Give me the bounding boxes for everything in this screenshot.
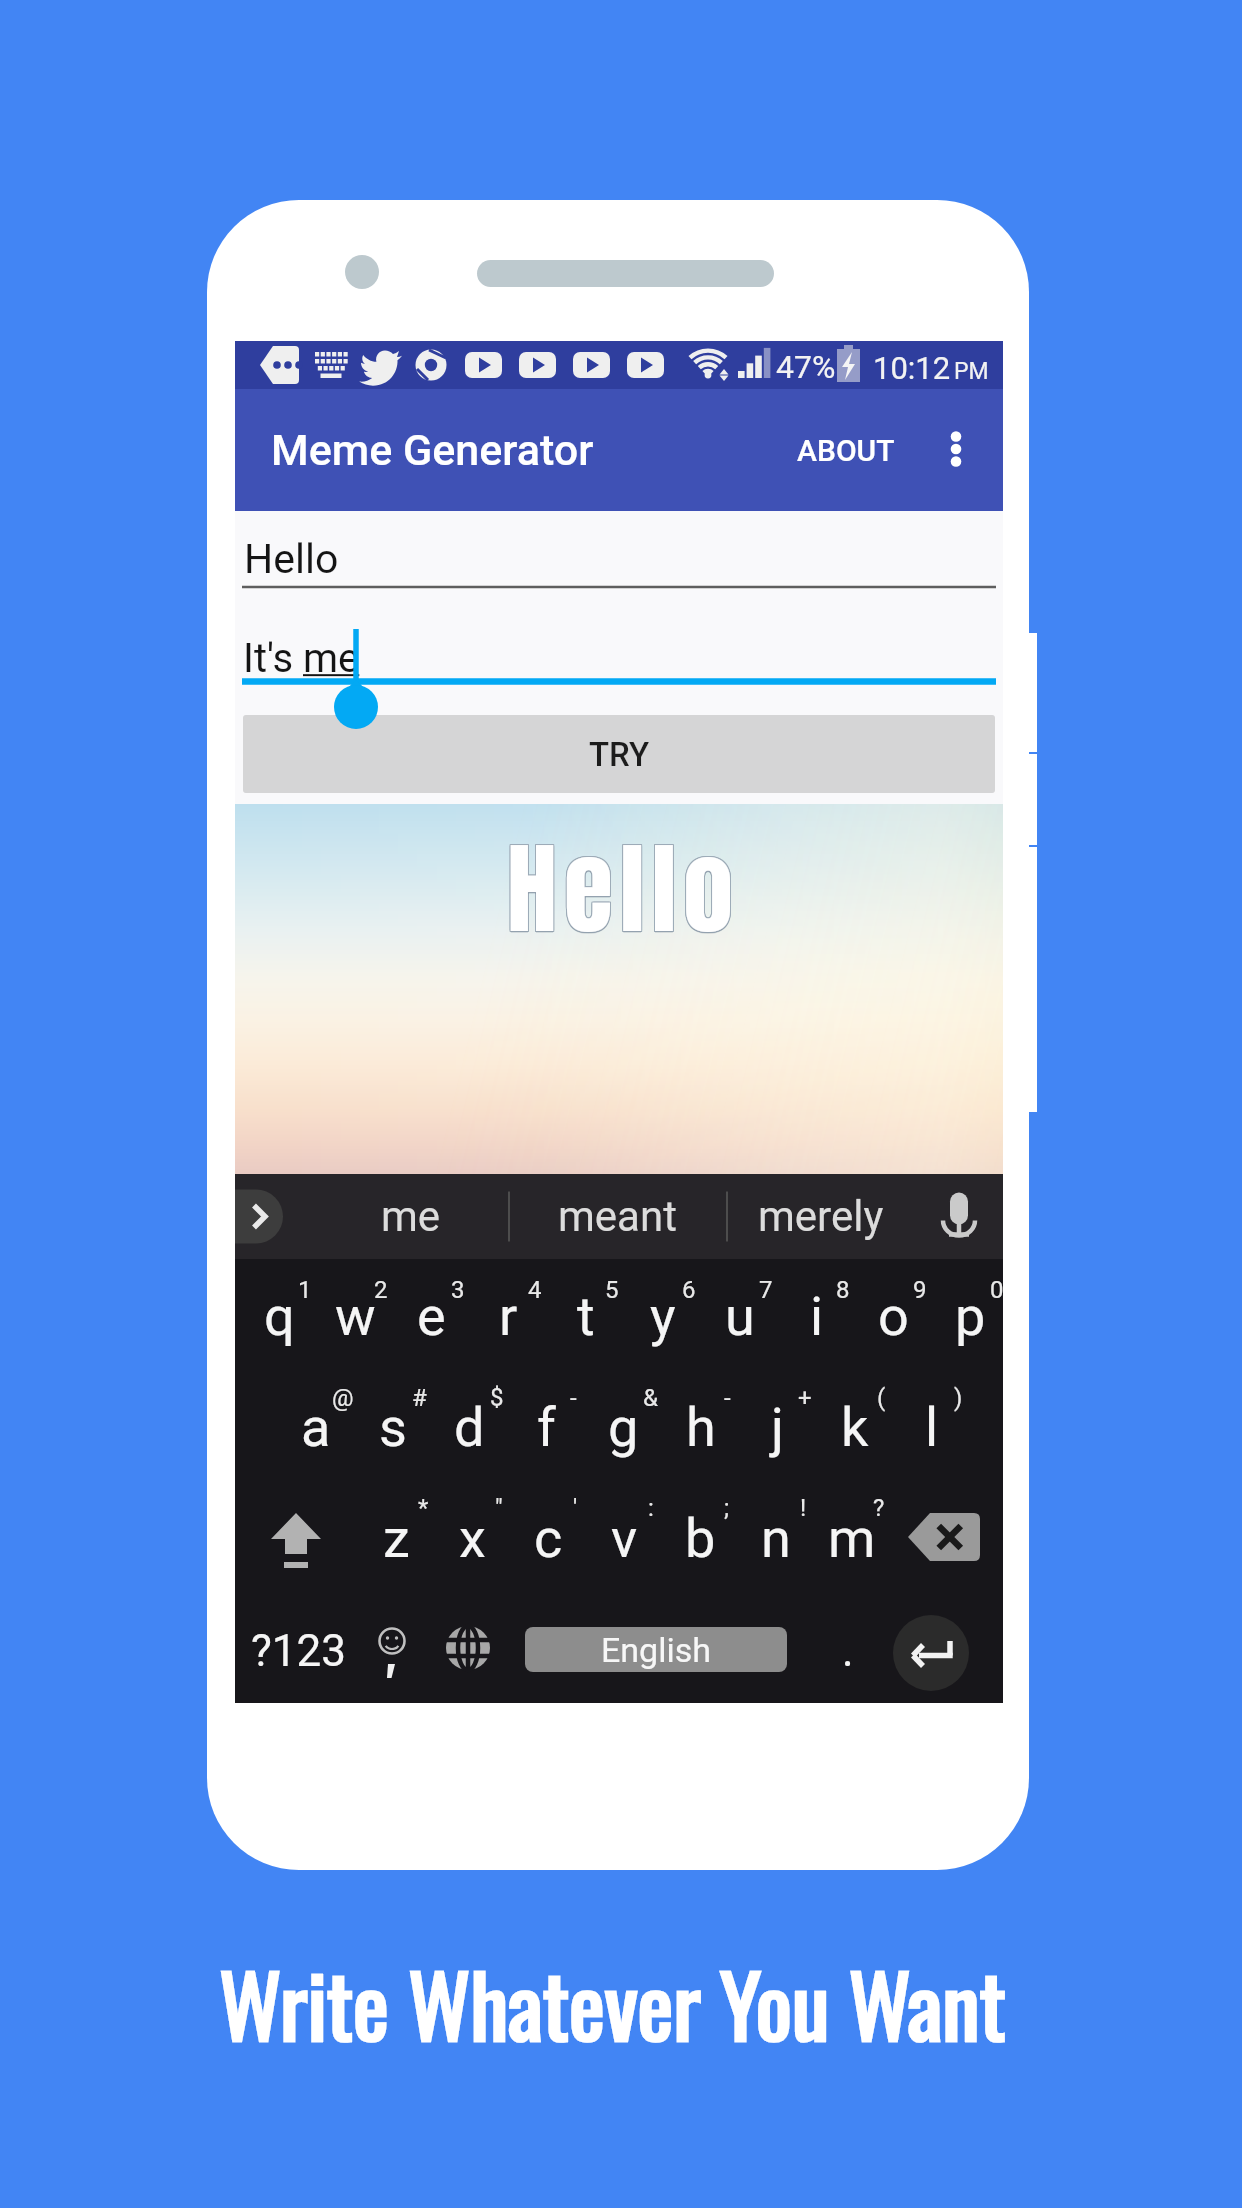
button[interactable]: b	[657, 1481, 733, 1592]
button[interactable]: q	[235, 1259, 311, 1370]
staticText: s	[379, 1396, 407, 1459]
staticText: :	[648, 1494, 654, 1522]
button[interactable]: s	[349, 1370, 426, 1481]
staticText: Hello	[506, 813, 739, 964]
button[interactable]: y	[618, 1259, 695, 1370]
staticText: o	[878, 1285, 909, 1348]
button[interactable]: a	[273, 1370, 349, 1481]
button[interactable]: Enter	[893, 1615, 969, 1691]
staticText: English	[601, 1630, 712, 1670]
button[interactable]: c	[505, 1481, 581, 1592]
staticText: Hello	[508, 814, 741, 965]
button[interactable]: i	[772, 1259, 849, 1370]
button[interactable]: meant	[517, 1174, 717, 1259]
staticText: Hello	[508, 813, 741, 964]
button[interactable]: f	[503, 1370, 580, 1481]
button[interactable]: u	[695, 1259, 772, 1370]
staticText: #	[412, 1384, 427, 1412]
staticText: Write Whatever You Want	[219, 1940, 1006, 2066]
staticText: )	[954, 1384, 963, 1412]
staticText: r	[499, 1285, 518, 1348]
button[interactable]: d	[426, 1370, 503, 1481]
button[interactable]: Expand suggestions	[235, 1174, 301, 1259]
staticText: z	[383, 1507, 410, 1570]
staticText: PM	[954, 358, 989, 385]
staticText: *	[418, 1494, 429, 1522]
button[interactable]: k	[811, 1370, 888, 1481]
button[interactable]: me	[311, 1174, 511, 1259]
button[interactable]: e	[387, 1259, 464, 1370]
staticText: 47%	[776, 348, 836, 386]
staticText: f	[537, 1396, 556, 1459]
staticText: Hello	[507, 814, 740, 965]
button[interactable]: ?123	[235, 1592, 363, 1703]
staticText: l	[925, 1396, 939, 1459]
staticText: .	[842, 1625, 854, 1677]
staticText: ?	[873, 1494, 885, 1522]
staticText: x	[459, 1507, 486, 1570]
button[interactable]: x	[429, 1481, 505, 1592]
staticText: w	[335, 1285, 376, 1348]
button[interactable]: l	[888, 1370, 965, 1481]
button[interactable]: v	[581, 1481, 657, 1592]
button[interactable]: h	[657, 1370, 734, 1481]
staticText: y	[650, 1285, 676, 1348]
button[interactable]: m	[809, 1481, 885, 1592]
staticText: Hello	[508, 812, 741, 963]
staticText: 5	[605, 1276, 619, 1304]
staticText: Hello	[507, 812, 740, 963]
button[interactable]: p	[926, 1259, 1003, 1370]
button[interactable]: Shift	[235, 1481, 353, 1592]
button[interactable]: .	[813, 1592, 883, 1703]
button[interactable]: TRY	[243, 715, 995, 793]
staticText: TRY	[589, 735, 649, 774]
staticText: merely	[758, 1192, 884, 1241]
staticText: $	[490, 1384, 504, 1412]
staticText: "	[495, 1494, 503, 1522]
staticText: -	[570, 1384, 577, 1412]
button[interactable]: More options	[927, 421, 985, 479]
staticText: 8	[836, 1276, 850, 1304]
button[interactable]: z	[353, 1481, 429, 1592]
staticText: Meme Generator	[271, 425, 594, 475]
staticText: m	[828, 1507, 876, 1570]
staticText: g	[608, 1396, 639, 1459]
staticText: n	[761, 1507, 791, 1570]
staticText: k	[841, 1396, 869, 1459]
button[interactable]: r	[464, 1259, 541, 1370]
staticText: (	[877, 1384, 886, 1412]
button[interactable]: English	[525, 1627, 787, 1672]
staticText: v	[611, 1507, 638, 1570]
button[interactable]: merely	[721, 1174, 921, 1259]
button[interactable]: Voice input	[925, 1174, 995, 1259]
staticText: me	[303, 635, 360, 682]
button[interactable]: Backspace	[885, 1481, 1003, 1592]
staticText: d	[454, 1396, 485, 1459]
staticText: +	[798, 1384, 812, 1412]
staticText: b	[685, 1507, 716, 1570]
button[interactable]: Change language	[431, 1592, 505, 1703]
staticText: me	[381, 1192, 441, 1241]
staticText: Hello	[506, 812, 739, 963]
staticText: 6	[682, 1276, 696, 1304]
button[interactable]: g	[580, 1370, 657, 1481]
button[interactable]: t	[541, 1259, 618, 1370]
staticText: ?123	[251, 1625, 346, 1677]
staticText: 10:12	[873, 350, 951, 386]
staticText: '	[573, 1494, 578, 1522]
staticText: q	[264, 1285, 295, 1348]
staticText: Hello	[507, 813, 740, 964]
button[interactable]: o	[849, 1259, 926, 1370]
button[interactable]: w	[311, 1259, 387, 1370]
staticText: i	[810, 1285, 824, 1348]
button[interactable]: Emoji	[355, 1592, 429, 1703]
staticText: 1	[298, 1276, 312, 1304]
staticText: 2	[374, 1276, 388, 1304]
staticText: It's	[243, 635, 303, 682]
button[interactable]: j	[734, 1370, 811, 1481]
button[interactable]: n	[733, 1481, 809, 1592]
staticText: 0	[990, 1276, 1003, 1304]
staticText: a	[301, 1396, 331, 1459]
button[interactable]: ABOUT	[781, 411, 911, 490]
staticText: @	[332, 1384, 354, 1412]
